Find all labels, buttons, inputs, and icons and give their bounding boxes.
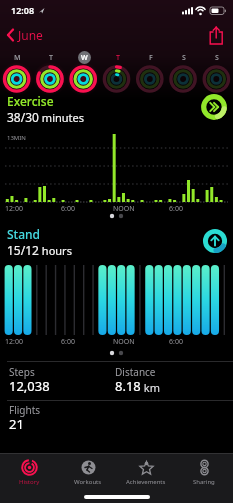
staticText: Exercise <box>7 93 54 109</box>
staticText: 12:00 <box>5 337 23 347</box>
staticText: 6:00 <box>169 204 183 214</box>
button[interactable]: Sharing <box>175 454 233 503</box>
staticText: hours <box>39 243 72 258</box>
staticText: 8.18 <box>115 377 141 395</box>
staticText: 12:00 <box>5 204 23 214</box>
staticText: June <box>18 27 43 43</box>
button[interactable] <box>202 228 228 254</box>
staticText: 6:00 <box>61 337 75 347</box>
staticText: W <box>81 53 88 63</box>
staticText: NOON <box>113 337 135 347</box>
staticText: Steps <box>9 365 35 379</box>
staticText: 21 <box>9 415 24 433</box>
staticText: minutes <box>39 110 85 125</box>
staticText: T <box>116 53 120 63</box>
staticText: 13MIN <box>7 134 26 142</box>
staticText: 15/12 <box>7 242 39 258</box>
staticText: 38/30 <box>7 109 39 125</box>
staticText: Achievements <box>126 478 166 486</box>
staticText: 12:08 <box>11 4 35 16</box>
staticText: M <box>14 53 21 63</box>
staticText: Distance <box>115 365 156 379</box>
staticText: Sharing <box>193 478 215 486</box>
button[interactable] <box>200 93 228 121</box>
button[interactable]: June <box>6 27 43 43</box>
button[interactable] <box>206 25 228 47</box>
staticText: T <box>49 53 53 63</box>
staticText: Stand <box>7 226 41 242</box>
staticText: F <box>149 53 153 63</box>
staticText: Flights <box>9 403 41 417</box>
button[interactable]: Achievements <box>117 454 175 503</box>
staticText: 6:00 <box>61 204 75 214</box>
button[interactable]: History <box>0 454 59 503</box>
staticText: km <box>141 380 161 395</box>
button[interactable]: Workouts <box>59 454 117 503</box>
staticText: History <box>19 478 40 486</box>
staticText: NOON <box>113 204 135 214</box>
staticText: Workouts <box>74 478 102 486</box>
staticText: S <box>215 53 219 63</box>
staticText: S <box>182 53 186 63</box>
staticText: 6:00 <box>169 337 183 347</box>
staticText: 12,038 <box>9 377 50 395</box>
